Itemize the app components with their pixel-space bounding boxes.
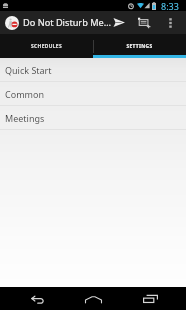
button[interactable]: Send <box>107 11 130 34</box>
staticText: SETTINGS <box>126 43 153 50</box>
button[interactable]: Back <box>17 287 57 310</box>
button[interactable]: Common <box>0 82 186 105</box>
staticText: Common <box>5 88 44 100</box>
staticText: Do Not Disturb Me… <box>23 16 111 29</box>
button[interactable]: Recent apps <box>130 287 170 310</box>
button[interactable]: SETTINGS <box>93 34 186 58</box>
button[interactable]: Quick Start <box>0 58 186 81</box>
button[interactable]: More options <box>159 11 181 34</box>
staticText: Meetings <box>5 112 45 124</box>
button[interactable]: SCHEDULES <box>0 34 93 58</box>
staticText: 8:33 <box>161 0 179 11</box>
button[interactable]: Meetings <box>0 106 186 129</box>
staticText: Quick Start <box>5 64 52 76</box>
staticText: SCHEDULES <box>31 43 62 50</box>
button[interactable]: Home <box>73 287 113 310</box>
button[interactable]: New schedule <box>132 11 156 34</box>
